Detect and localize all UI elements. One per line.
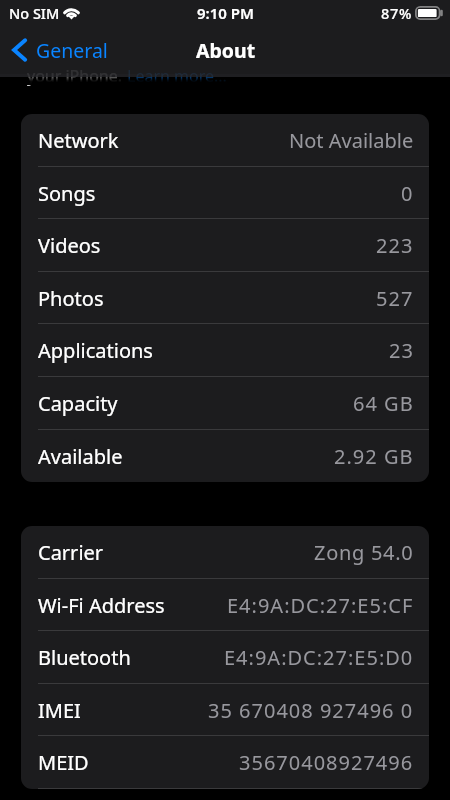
staticText: About	[196, 37, 256, 64]
staticText: Songs	[38, 180, 96, 207]
button[interactable]: IMEI	[21, 684, 429, 736]
staticText: IMEI	[38, 697, 81, 724]
staticText: 35670408927496	[239, 749, 414, 776]
staticText: E4:9A:DC:27:E5:D0	[224, 644, 414, 671]
other: Wi-Fi signal	[62, 4, 81, 19]
staticText: Wi-Fi Address	[38, 592, 165, 619]
staticText: E4:9A:DC:27:E5:CF	[227, 592, 414, 619]
button[interactable]: Carrier	[21, 526, 429, 579]
staticText: 0	[401, 180, 414, 207]
staticText: General	[36, 37, 108, 64]
staticText: 64 GB	[353, 390, 414, 417]
staticText: 87%	[381, 3, 413, 23]
staticText: 223	[376, 232, 414, 259]
staticText: 35 670408 927496 0	[208, 697, 414, 724]
button[interactable]: MEID	[21, 736, 429, 789]
button[interactable]: General	[8, 36, 108, 64]
staticText: 527	[376, 285, 414, 312]
staticText: Learn more...	[127, 65, 227, 87]
staticText: Photos	[38, 285, 104, 312]
staticText: 9:10 PM	[197, 3, 254, 23]
staticText: Zong 54.0	[314, 539, 414, 566]
staticText: No SIM	[9, 3, 60, 23]
staticText: Carrier	[38, 539, 104, 566]
button[interactable]: Bluetooth	[21, 631, 429, 684]
staticText: Network	[38, 127, 119, 154]
staticText: 23	[389, 337, 414, 364]
button[interactable]: Wi-Fi Address	[21, 579, 429, 631]
staticText: Available	[38, 443, 123, 470]
staticText: your iPhone.	[27, 65, 127, 87]
button[interactable]: Network	[21, 114, 429, 167]
staticText: Applications	[38, 337, 153, 364]
other: Battery 87 percent	[415, 6, 444, 20]
button[interactable]: Available	[21, 430, 429, 482]
button[interactable]: Photos	[21, 272, 429, 324]
button[interactable]: Capacity	[21, 377, 429, 430]
button[interactable]: Songs	[21, 167, 429, 219]
staticText: Not Available	[289, 127, 414, 154]
staticText: Bluetooth	[38, 644, 131, 671]
button[interactable]: Videos	[21, 219, 429, 272]
staticText: Capacity	[38, 390, 118, 417]
staticText: Videos	[38, 232, 101, 259]
button[interactable]: Applications	[21, 324, 429, 377]
staticText: MEID	[38, 749, 89, 776]
staticText: 2.92 GB	[334, 443, 414, 470]
